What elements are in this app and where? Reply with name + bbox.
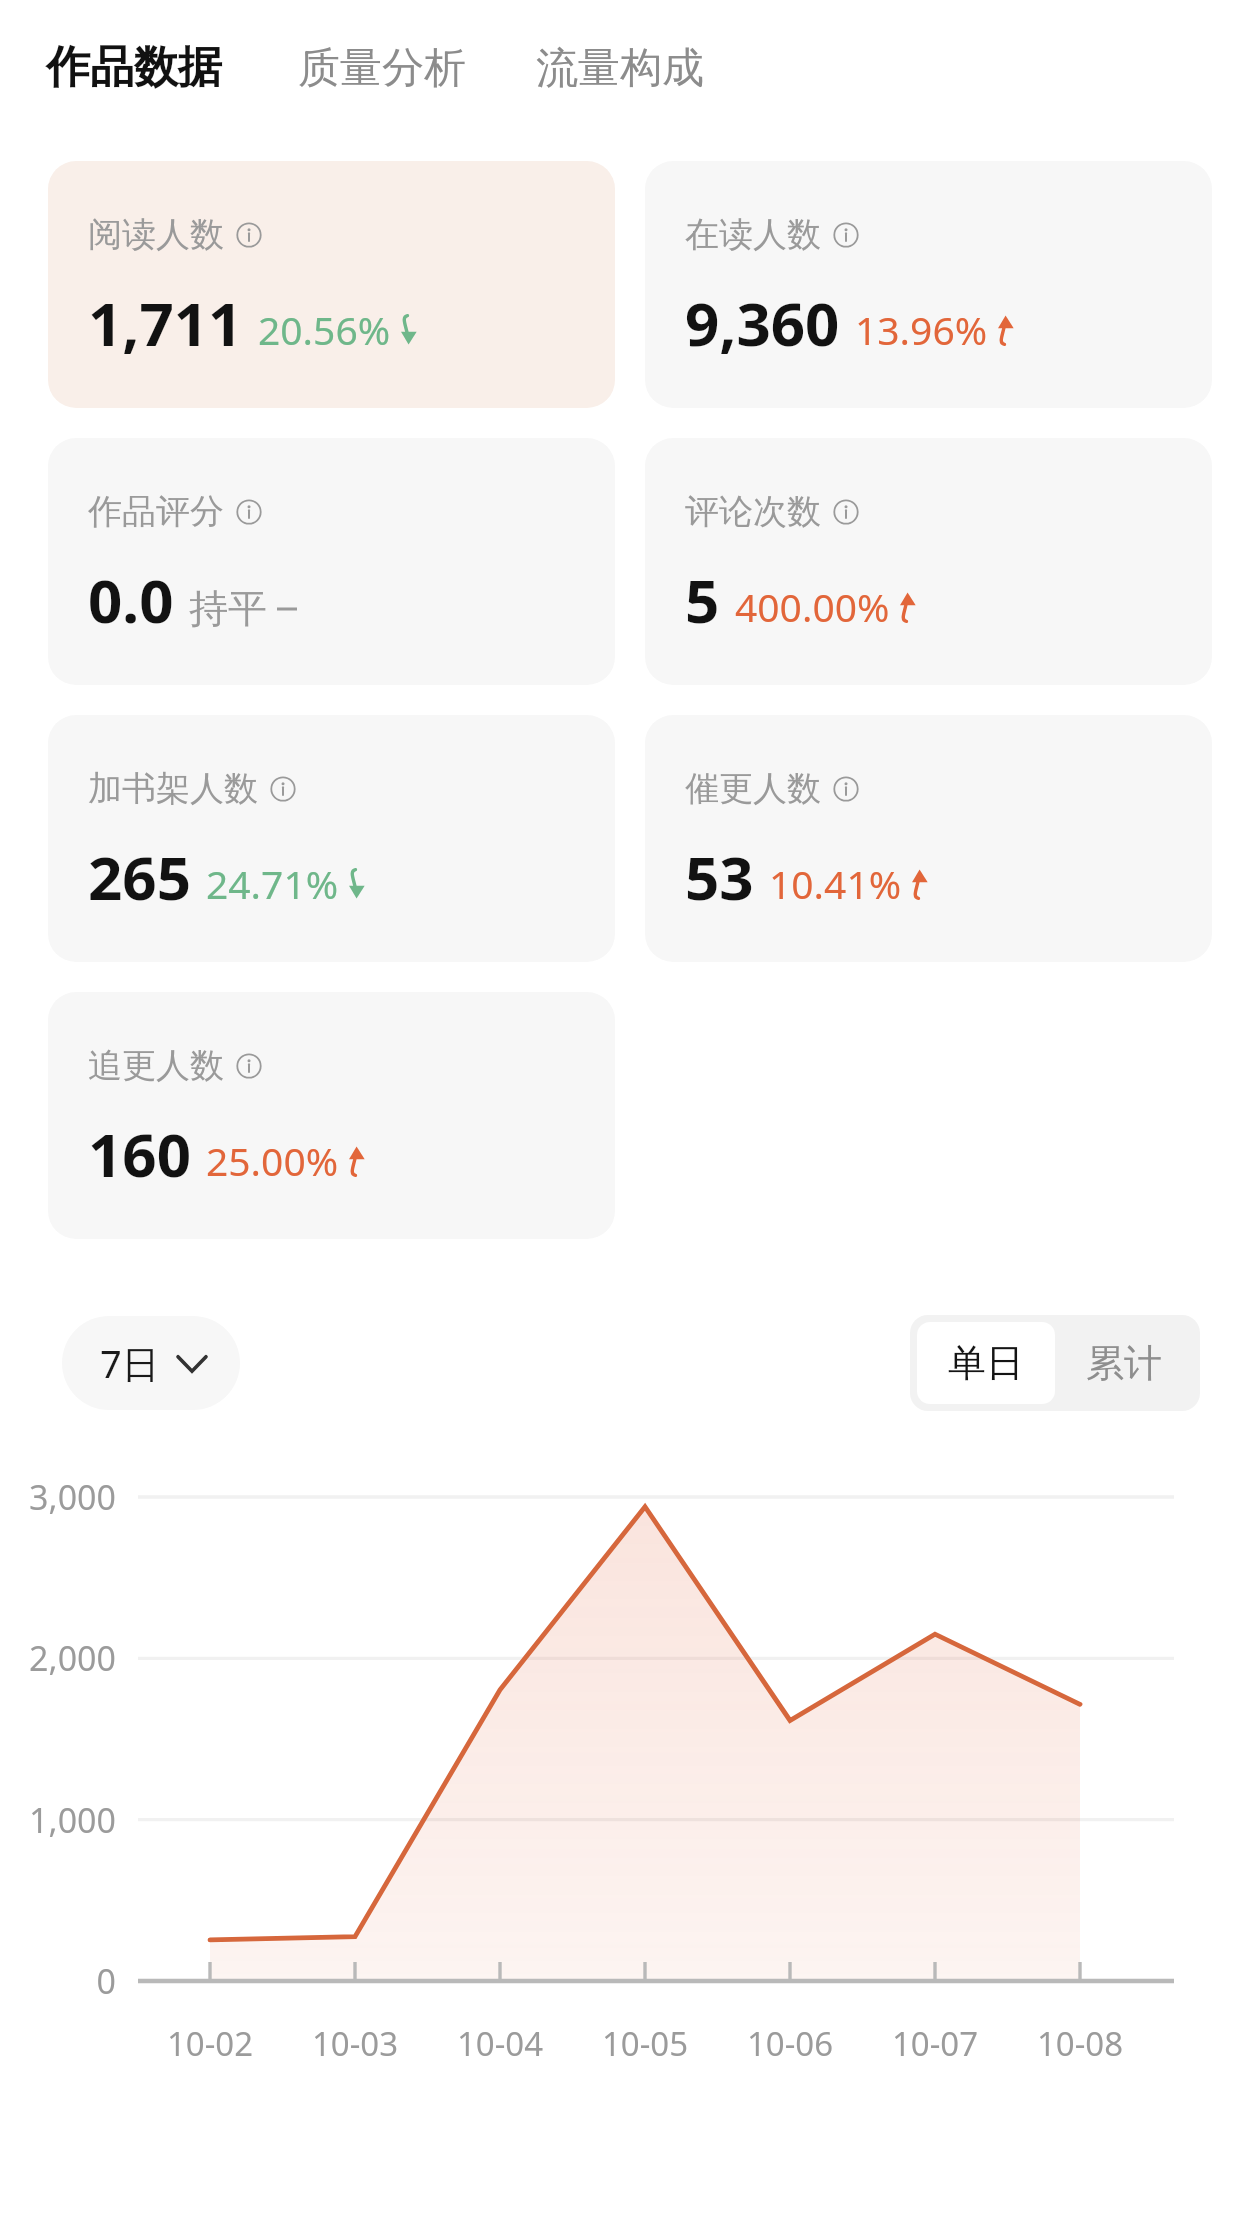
staticText: 单日 — [948, 1339, 1024, 1387]
button[interactable]: 作品评分 — [48, 438, 615, 685]
staticText: 0.0 — [88, 559, 174, 641]
staticText: 10-05 — [573, 2021, 717, 2066]
staticText: 3,000 — [0, 1474, 116, 1520]
button[interactable]: 单日 — [917, 1322, 1055, 1404]
button[interactable]: 流量构成 — [536, 42, 704, 95]
staticText: 7日 — [100, 1337, 160, 1389]
staticText: 160 — [88, 1113, 191, 1195]
staticText: 加书架人数 — [88, 767, 258, 810]
staticText: 10-06 — [718, 2021, 862, 2066]
staticText: 24.71% — [206, 857, 339, 910]
staticText: 持平 — [189, 584, 267, 633]
button[interactable]: 质量分析 — [298, 42, 466, 95]
staticText: 10-03 — [283, 2021, 427, 2066]
staticText: 10-02 — [138, 2021, 282, 2066]
button[interactable]: 累计 — [1055, 1322, 1193, 1404]
staticText: 阅读人数 — [88, 213, 224, 256]
staticText: 评论次数 — [685, 490, 821, 533]
staticText: 20.56% — [258, 303, 391, 356]
staticText: 53 — [685, 836, 754, 918]
button[interactable]: 加书架人数 — [48, 715, 615, 962]
staticText: 累计 — [1086, 1339, 1162, 1387]
staticText: 9,360 — [685, 282, 840, 364]
button[interactable]: 评论次数 — [645, 438, 1212, 685]
staticText: 25.00% — [206, 1134, 339, 1187]
staticText: 1,000 — [0, 1797, 116, 1843]
staticText: 在读人数 — [685, 213, 821, 256]
staticText: 流量构成 — [536, 42, 704, 95]
staticText: 10-08 — [1008, 2021, 1152, 2066]
staticText: 265 — [88, 836, 191, 918]
staticText: 1,711 — [88, 282, 243, 364]
staticText: 10-07 — [863, 2021, 1007, 2066]
staticText: 10-04 — [428, 2021, 572, 2066]
button[interactable]: 催更人数 — [645, 715, 1212, 962]
other: 展开日期选择 — [178, 1355, 206, 1372]
staticText: 催更人数 — [685, 767, 821, 810]
button[interactable]: 追更人数 — [48, 992, 615, 1239]
button[interactable]: 7日 — [62, 1316, 240, 1410]
staticText: 13.96% — [855, 303, 988, 356]
staticText: 10.41% — [769, 857, 902, 910]
button[interactable]: 作品数据 — [46, 40, 222, 95]
staticText: 作品评分 — [88, 490, 224, 533]
staticText: 5 — [685, 559, 720, 641]
button[interactable]: 阅读人数 — [48, 161, 615, 408]
button[interactable]: 在读人数 — [645, 161, 1212, 408]
staticText: 2,000 — [0, 1635, 116, 1681]
staticText: 0 — [0, 1958, 116, 2004]
staticText: 400.00% — [735, 580, 890, 633]
staticText: 追更人数 — [88, 1044, 224, 1087]
staticText: 作品数据 — [46, 40, 222, 95]
staticText: 质量分析 — [298, 42, 466, 95]
